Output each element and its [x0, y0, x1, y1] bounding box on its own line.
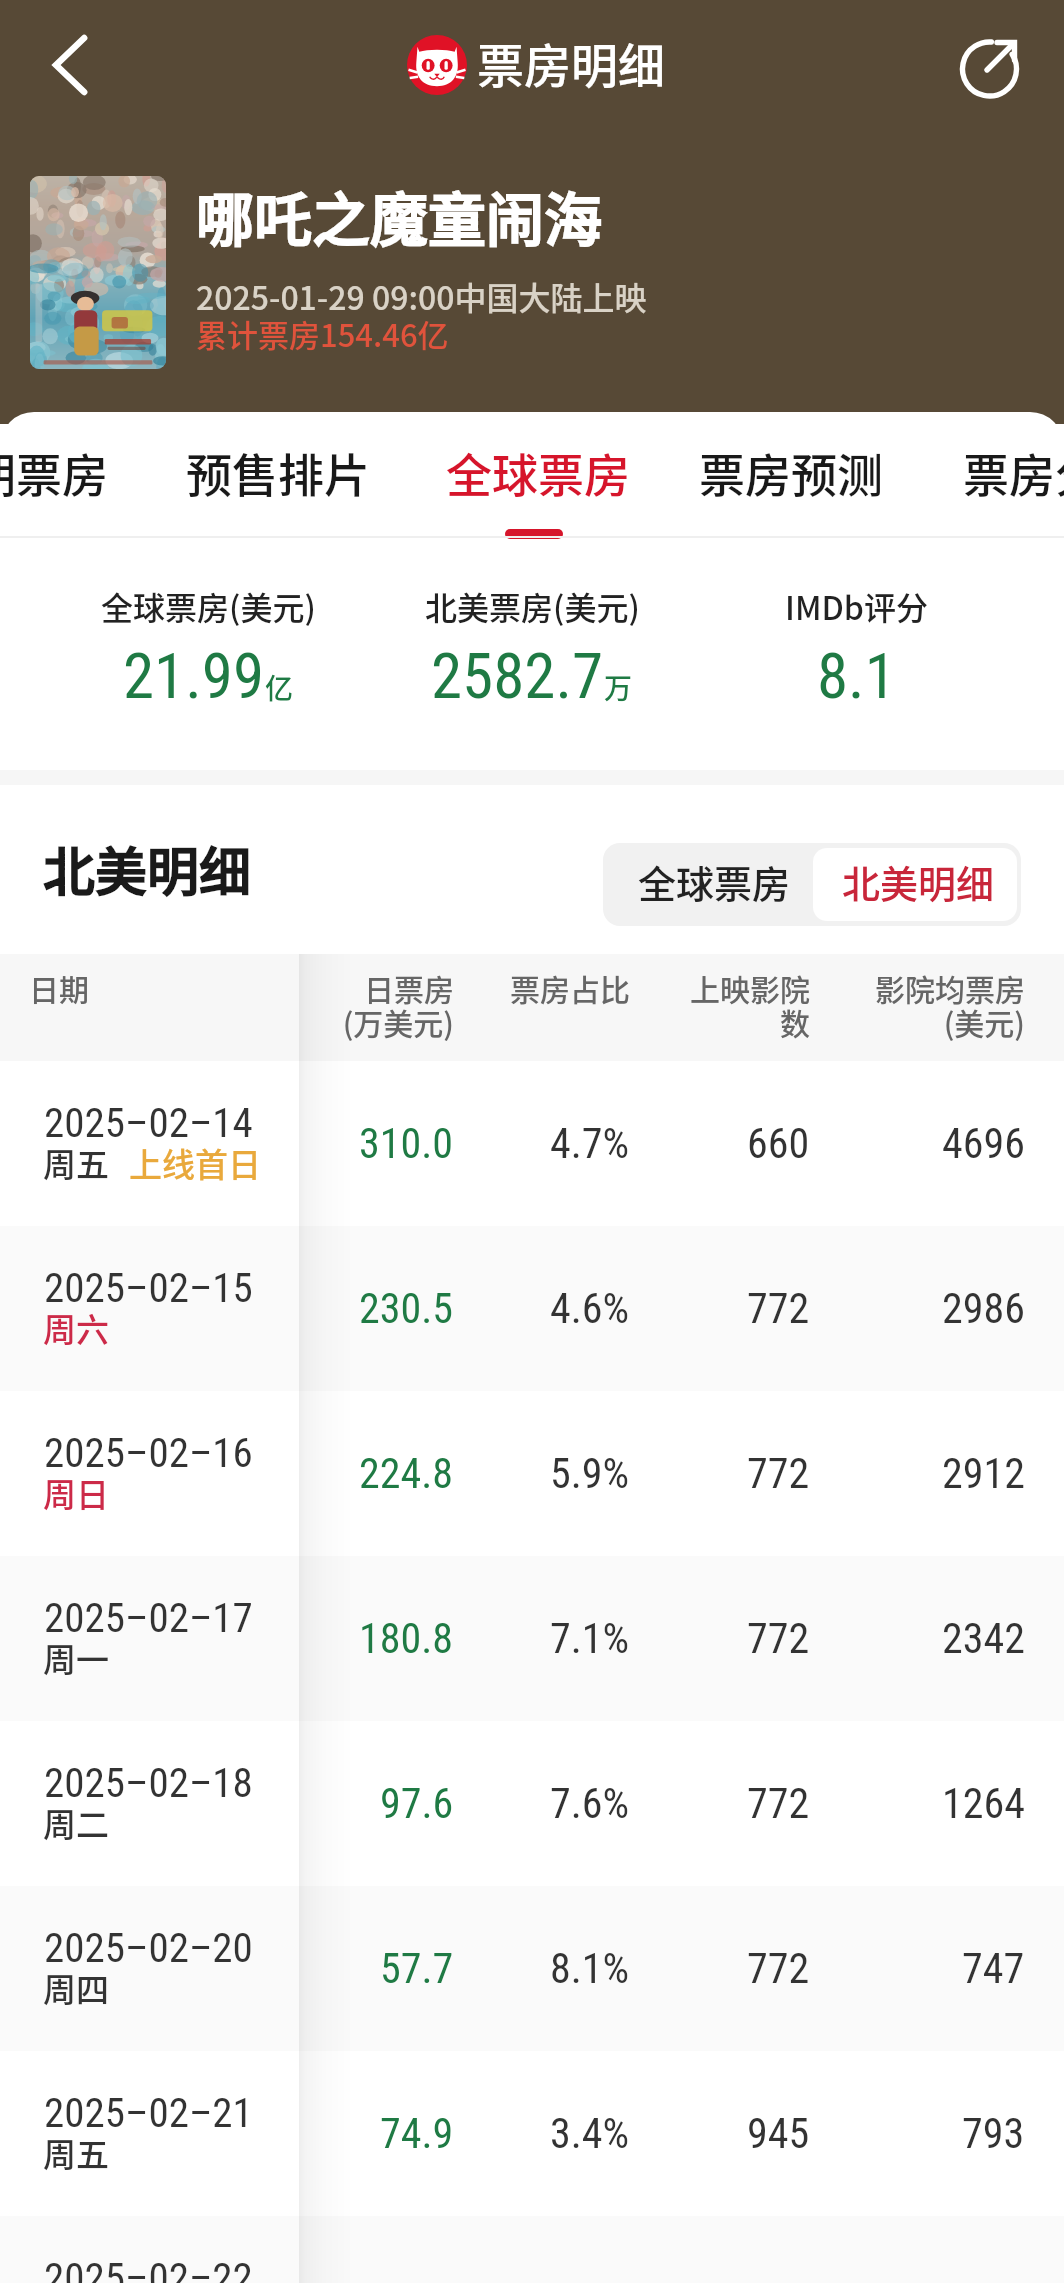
staticText: 周一: [43, 1634, 109, 1682]
staticText: 票房占比: [510, 966, 630, 1009]
staticText: 4.7%: [550, 1119, 630, 1168]
staticText: 北美明细: [43, 831, 252, 906]
staticText: 票房明细: [477, 28, 665, 96]
staticText: 772: [747, 1614, 810, 1663]
staticText: 4.6%: [550, 1284, 630, 1333]
button[interactable]: 2025–02–18: [0, 1721, 1064, 1886]
staticText: 230.5: [359, 1284, 454, 1333]
staticText: 北美明细: [842, 854, 995, 909]
button[interactable]: 2025–02–15: [0, 1226, 1064, 1391]
staticText: 2582.7: [431, 640, 604, 714]
staticText: 日票房 (万美元): [342, 966, 454, 1044]
staticText: 周六: [43, 1304, 109, 1352]
staticText: 21.99: [123, 640, 265, 714]
staticText: 2912: [942, 1449, 1025, 1498]
staticText: 310.0: [359, 1119, 454, 1168]
staticText: 预售排片: [186, 439, 370, 506]
staticText: 747: [962, 1944, 1025, 1993]
staticText: 北美票房(美元): [425, 583, 640, 629]
staticText: 全球票房: [446, 439, 630, 506]
staticText: 2025–02–17: [44, 1594, 253, 1642]
button[interactable]: 2025–02–20: [0, 1886, 1064, 2051]
button[interactable]: [30, 176, 166, 369]
staticText: 全球票房: [638, 854, 791, 909]
staticText: 4696: [942, 1119, 1025, 1168]
staticText: 2025-01-29 09:00中国大陆上映: [196, 273, 647, 319]
staticText: 周日: [43, 1469, 109, 1517]
staticText: 772: [747, 1284, 810, 1333]
staticText: 期票房: [0, 439, 108, 506]
staticText: 5.9%: [550, 1449, 630, 1498]
staticText: 772: [747, 1449, 810, 1498]
staticText: 772: [747, 1944, 810, 1993]
button[interactable]: IMDb评分: [694, 538, 1018, 770]
button[interactable]: Back: [12, 0, 124, 130]
staticText: 哪吒之魔童闹海: [196, 174, 603, 258]
staticText: IMDb评分: [785, 583, 928, 629]
staticText: 945: [747, 2109, 810, 2158]
staticText: 224.8: [359, 1449, 454, 1498]
staticText: 2025–02–22: [44, 2254, 253, 2283]
button[interactable]: 北美明细: [813, 848, 1017, 921]
staticText: 万: [604, 667, 633, 708]
button[interactable]: 北美票房(美元): [370, 538, 694, 770]
staticText: 7.6%: [550, 1779, 630, 1828]
button[interactable]: 2025–02–22: [0, 2216, 1064, 2283]
staticText: 2025–02–16: [44, 1429, 253, 1477]
button[interactable]: 2025–02–16: [0, 1391, 1064, 1556]
staticText: 8.1: [817, 640, 896, 714]
staticText: 2025–02–21: [44, 2089, 253, 2137]
staticText: 影院均票房 (美元): [875, 966, 1025, 1044]
button[interactable]: 全球票房(美元): [46, 538, 370, 770]
staticText: 793: [962, 2109, 1025, 2158]
staticText: 57.7: [380, 1944, 454, 1993]
staticText: 周二: [43, 1799, 109, 1847]
staticText: 周四: [43, 1964, 109, 2012]
button[interactable]: 全球票房: [434, 412, 642, 537]
staticText: 2025–02–14: [44, 1099, 253, 1147]
staticText: 660: [747, 1119, 810, 1168]
staticText: 97.6: [380, 1779, 454, 1828]
staticText: 74.9: [380, 2109, 454, 2158]
staticText: 2342: [942, 1614, 1025, 1663]
button[interactable]: Share: [928, 0, 1048, 130]
staticText: 2025–02–15: [44, 1264, 253, 1312]
staticText: 全球票房(美元): [101, 583, 316, 629]
staticText: 7.1%: [550, 1614, 630, 1663]
button[interactable]: 票房预测: [687, 412, 895, 537]
staticText: 180.8: [359, 1614, 454, 1663]
staticText: 8.1%: [550, 1944, 630, 1993]
button[interactable]: 2025–02–21: [0, 2051, 1064, 2216]
button[interactable]: 票房分: [951, 412, 1064, 537]
button[interactable]: 预售排片: [174, 412, 382, 537]
staticText: 2986: [942, 1284, 1025, 1333]
staticText: 上线首日: [129, 1139, 261, 1187]
button[interactable]: 2025–02–14: [0, 1061, 1064, 1226]
staticText: 2025–02–20: [44, 1924, 253, 1972]
staticText: 票房预测: [699, 439, 883, 506]
staticText: 日期: [29, 966, 89, 1009]
button[interactable]: 2025–02–17: [0, 1556, 1064, 1721]
staticText: 累计票房154.46亿: [196, 311, 449, 356]
staticText: 周五: [43, 1139, 109, 1187]
staticText: 票房分: [963, 439, 1064, 506]
staticText: 周五: [43, 2129, 109, 2177]
staticText: 772: [747, 1779, 810, 1828]
staticText: 2025–02–18: [44, 1759, 253, 1807]
button[interactable]: 期票房: [0, 412, 120, 537]
staticText: 上映影院 数: [690, 966, 810, 1044]
staticText: 3.4%: [550, 2109, 630, 2158]
staticText: 1264: [942, 1779, 1025, 1828]
button[interactable]: 全球票房: [614, 848, 814, 921]
staticText: 亿: [265, 667, 294, 708]
